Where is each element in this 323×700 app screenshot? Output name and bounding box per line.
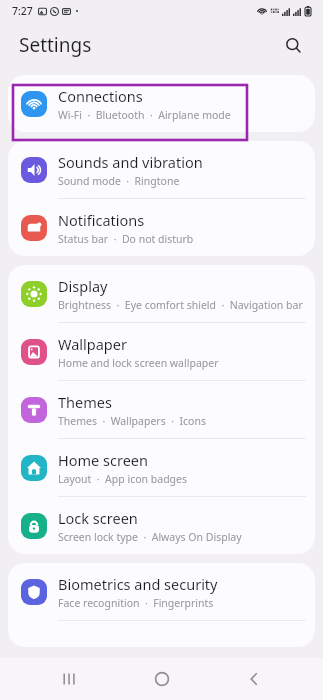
- staticText: Layout · App icon badges: [58, 472, 188, 486]
- button[interactable]: Search: [276, 28, 310, 62]
- button[interactable]: Wallpaper: [8, 323, 315, 380]
- button[interactable]: Home: [139, 658, 185, 700]
- staticText: Notifications: [58, 210, 145, 230]
- staticText: Sound mode · Ringtone: [58, 174, 180, 188]
- staticText: Face recognition · Fingerprints: [58, 596, 214, 610]
- staticText: Wallpaper: [58, 334, 127, 354]
- staticText: Themes · Wallpapers · Icons: [58, 414, 206, 428]
- button[interactable]: Home screen: [8, 439, 315, 496]
- staticText: Settings: [19, 32, 92, 58]
- staticText: Home and lock screen wallpaper: [58, 356, 219, 370]
- staticText: Lock screen: [58, 508, 138, 528]
- button[interactable]: Notifications: [8, 199, 315, 256]
- button[interactable]: Display: [8, 265, 315, 322]
- button[interactable]: Recents: [46, 658, 92, 700]
- staticText: Brightness · Eye comfort shield · Naviga…: [58, 298, 303, 312]
- staticText: Biometrics and security: [58, 574, 218, 594]
- staticText: Screen lock type · Always On Display: [58, 530, 242, 544]
- button[interactable]: Sounds and vibration: [8, 141, 315, 198]
- staticText: Sounds and vibration: [58, 152, 203, 172]
- button[interactable]: Connections: [8, 75, 315, 132]
- staticText: Display: [58, 276, 108, 296]
- button[interactable]: Lock screen: [8, 497, 315, 554]
- button[interactable]: Biometrics and security: [8, 563, 315, 620]
- staticText: Wi-Fi · Bluetooth · Airplane mode: [58, 108, 231, 122]
- staticText: Themes: [58, 392, 112, 412]
- button[interactable]: Themes: [8, 381, 315, 438]
- staticText: Connections: [58, 86, 143, 106]
- staticText: 7:27: [12, 4, 33, 18]
- staticText: Status bar · Do not disturb: [58, 232, 194, 246]
- button[interactable]: Back: [231, 658, 277, 700]
- staticText: Home screen: [58, 450, 148, 470]
